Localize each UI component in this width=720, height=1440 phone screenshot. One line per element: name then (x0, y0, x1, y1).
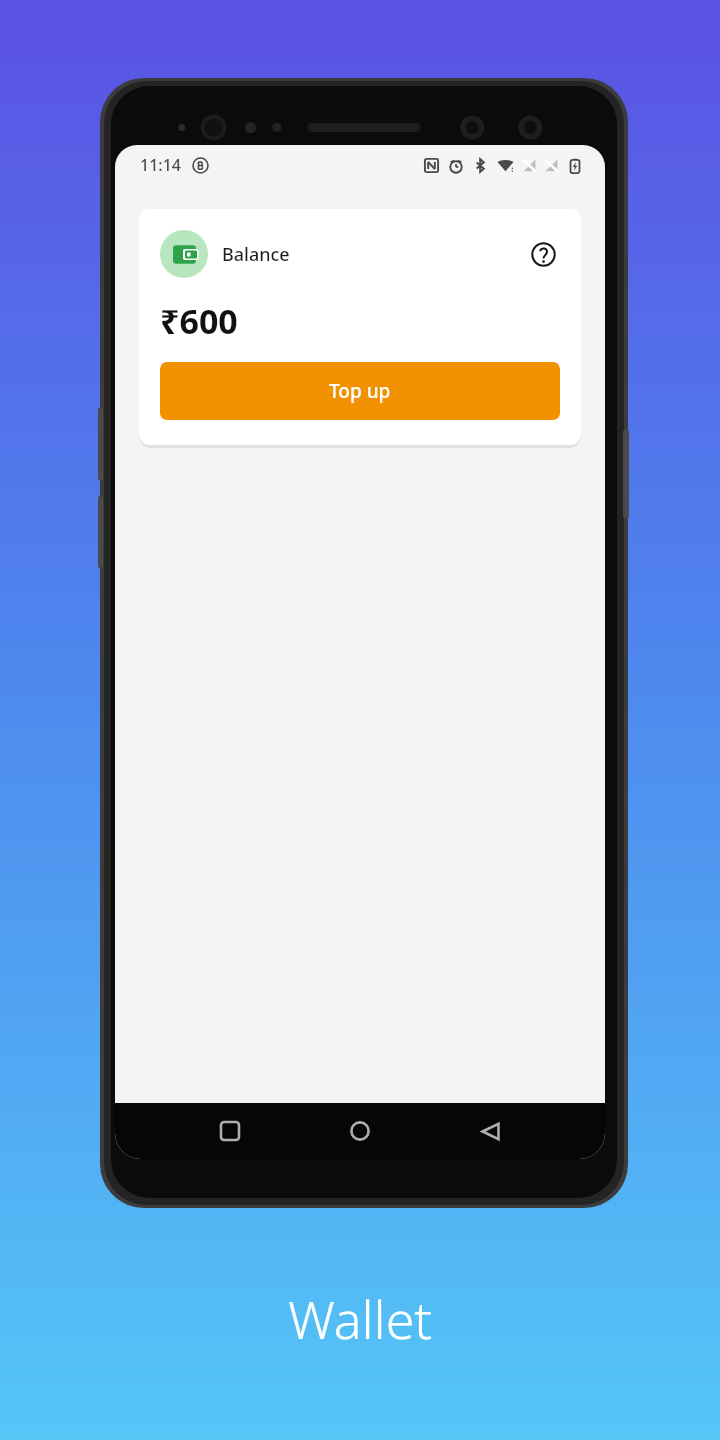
button[interactable]: Home (337, 1108, 383, 1154)
button[interactable]: Recents (207, 1108, 253, 1154)
staticText: Top up (329, 378, 391, 404)
staticText: 11:14 (140, 154, 181, 176)
staticText: ₹600 (160, 298, 238, 344)
button[interactable]: Top up (160, 362, 560, 420)
button[interactable]: Help (526, 237, 560, 271)
staticText: Wallet (0, 1283, 720, 1354)
button[interactable]: Back (467, 1108, 513, 1154)
staticText: Balance (222, 242, 290, 267)
